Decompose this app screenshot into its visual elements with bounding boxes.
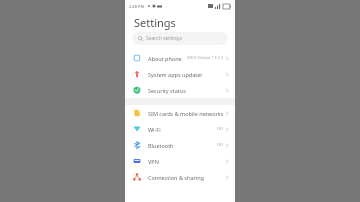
button[interactable]: Wi-Fi bbox=[125, 121, 235, 137]
button[interactable]: Connection and sharing bbox=[125, 169, 235, 185]
other: Connection and sharing bbox=[133, 173, 141, 181]
other: Wi-Fi bbox=[133, 125, 141, 133]
button[interactable]: About phone bbox=[125, 50, 235, 66]
button[interactable]: VPN bbox=[125, 153, 235, 169]
staticText: Settings bbox=[134, 15, 176, 30]
button[interactable]: Search settings bbox=[132, 32, 228, 45]
button[interactable]: System apps updater bbox=[125, 66, 235, 82]
staticText: Connection & sharing bbox=[148, 174, 204, 181]
staticText: About phone bbox=[148, 55, 182, 62]
other: Security status bbox=[133, 86, 141, 94]
staticText: Bluetooth bbox=[148, 142, 174, 149]
staticText: Security status bbox=[148, 87, 186, 94]
staticText: MIUI Global 12.0.3 bbox=[187, 55, 224, 61]
staticText: Off bbox=[217, 142, 224, 148]
staticText: 2:48 PM bbox=[129, 4, 145, 9]
staticText: Wi-Fi bbox=[148, 126, 161, 133]
staticText: Off bbox=[217, 126, 224, 132]
other: System apps updater bbox=[133, 70, 141, 78]
other: Bluetooth bbox=[133, 141, 141, 149]
other: SIM cards and mobile networks bbox=[133, 109, 141, 117]
staticText: VPN bbox=[148, 158, 159, 165]
staticText: Search settings bbox=[146, 35, 182, 42]
staticText: SIM cards & mobile networks bbox=[148, 110, 224, 117]
button[interactable]: Bluetooth bbox=[125, 137, 235, 153]
staticText: System apps updater bbox=[148, 71, 203, 78]
other: About phone bbox=[133, 54, 141, 62]
button[interactable]: Security status bbox=[125, 82, 235, 98]
other: VPN bbox=[133, 157, 141, 165]
button[interactable]: SIM cards and mobile networks bbox=[125, 105, 235, 121]
